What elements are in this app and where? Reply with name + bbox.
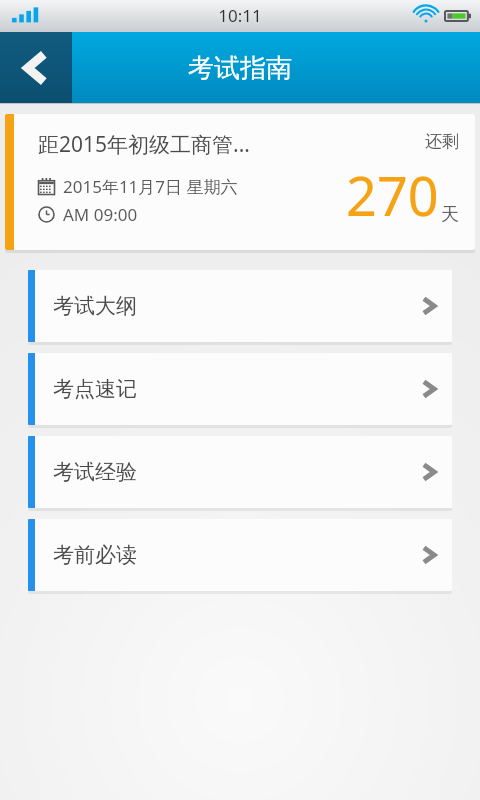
button[interactable]: 考试大纲: [28, 270, 452, 342]
button[interactable]: 考点速记: [28, 353, 452, 425]
staticText: 考前必读: [53, 542, 420, 568]
staticText: 10:11: [218, 4, 262, 27]
staticText: 还剩: [425, 131, 459, 152]
staticText: 270: [346, 158, 439, 232]
staticText: AM 09:00: [63, 203, 138, 226]
button[interactable]: 距2015年初级工商管...: [5, 114, 475, 250]
button[interactable]: 考试经验: [28, 436, 452, 508]
staticText: 考试大纲: [53, 293, 420, 319]
button[interactable]: 考前必读: [28, 519, 452, 591]
staticText: 距2015年初级工商管...: [38, 130, 250, 159]
staticText: 考点速记: [53, 376, 420, 402]
staticText: 天: [441, 203, 459, 226]
staticText: 考试指南: [188, 52, 292, 85]
staticText: 2015年11月7日 星期六: [63, 175, 238, 198]
staticText: 考试经验: [53, 459, 420, 485]
button[interactable]: Back: [0, 32, 72, 104]
